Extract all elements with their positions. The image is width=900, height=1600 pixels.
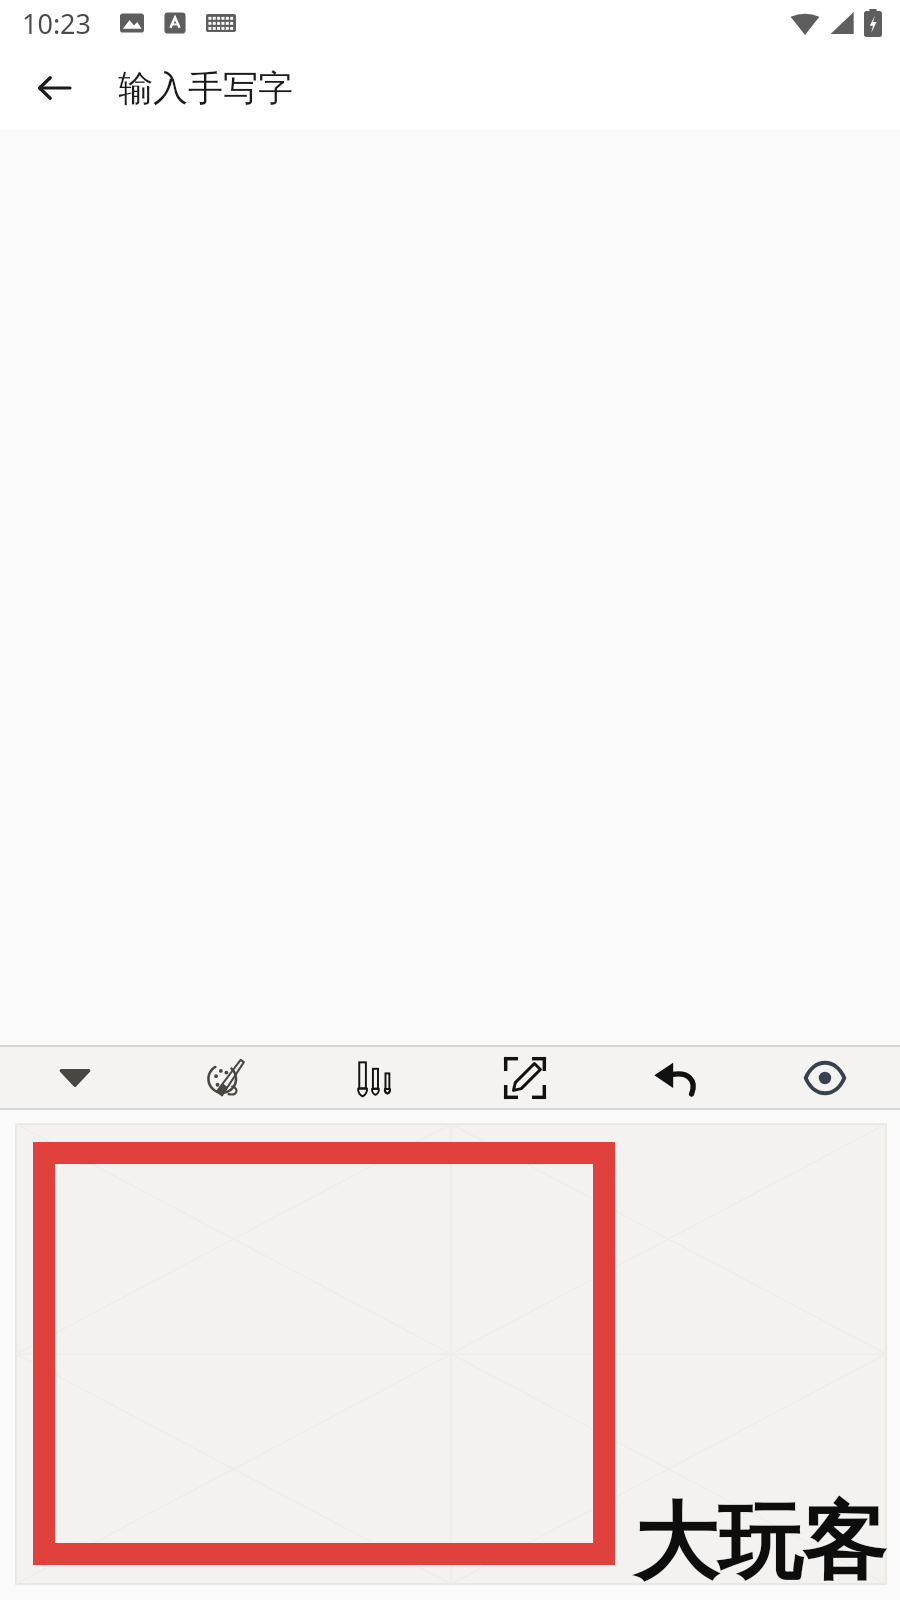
button[interactable]: Undo bbox=[600, 1047, 750, 1108]
button[interactable]: Color picker bbox=[0, 1047, 150, 1108]
staticText: 10:23 bbox=[22, 5, 92, 42]
staticText: 大玩客 bbox=[634, 1490, 886, 1596]
staticText: 输入手写字 bbox=[118, 66, 293, 110]
button[interactable]: Palette bbox=[150, 1047, 300, 1108]
button[interactable]: Back bbox=[20, 54, 88, 122]
button[interactable]: Pen width bbox=[300, 1047, 450, 1108]
button[interactable]: Edit region bbox=[450, 1047, 600, 1108]
button[interactable]: Preview bbox=[750, 1047, 900, 1108]
button[interactable]: Handwriting area bbox=[0, 1110, 900, 1600]
